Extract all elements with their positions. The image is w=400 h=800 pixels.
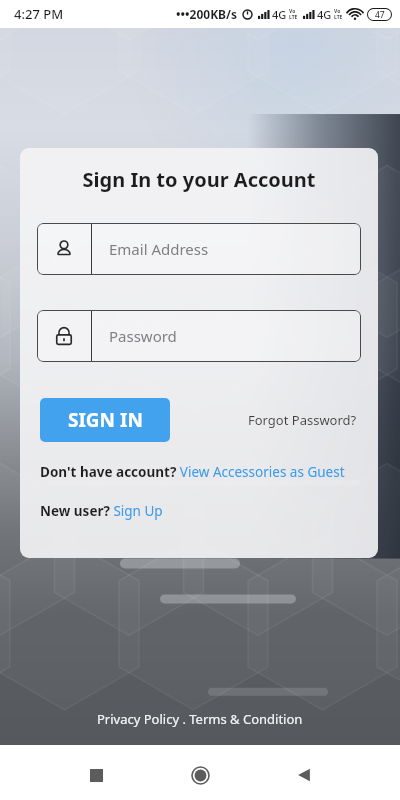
- button[interactable]: Forgot Password?: [244, 407, 361, 433]
- staticText: Sign In to your Account: [20, 166, 378, 193]
- staticText: Forgot Password?: [248, 411, 357, 429]
- button[interactable]: Recent apps: [74, 753, 118, 797]
- button[interactable]: Don't have account? View Accessories as …: [40, 463, 345, 481]
- staticText: 4:27 PM: [14, 5, 64, 23]
- button[interactable]: Back: [282, 753, 326, 797]
- staticText: SIGN IN: [68, 407, 143, 433]
- staticText: Password: [109, 326, 177, 346]
- button[interactable]: Password: [37, 310, 361, 362]
- staticText: New user? Sign Up: [40, 502, 163, 520]
- staticText: Privacy Policy . Terms & Condition: [97, 710, 303, 728]
- button[interactable]: New user? Sign Up: [40, 502, 163, 520]
- staticText: 4G: [272, 7, 287, 22]
- button[interactable]: Home: [178, 753, 222, 797]
- staticText: Don't have account? View Accessories as …: [40, 463, 345, 481]
- staticText: Email Address: [109, 239, 209, 259]
- staticText: •••200KB/s: [176, 6, 238, 22]
- staticText: 47: [375, 9, 385, 20]
- staticText: Vo LTE: [334, 8, 343, 21]
- button[interactable]: Privacy Policy . Terms & Condition: [89, 708, 311, 730]
- button[interactable]: SIGN IN: [40, 398, 170, 442]
- staticText: 4G: [317, 7, 332, 22]
- button[interactable]: Email Address: [37, 223, 361, 275]
- staticText: Vo LTE: [289, 8, 298, 21]
